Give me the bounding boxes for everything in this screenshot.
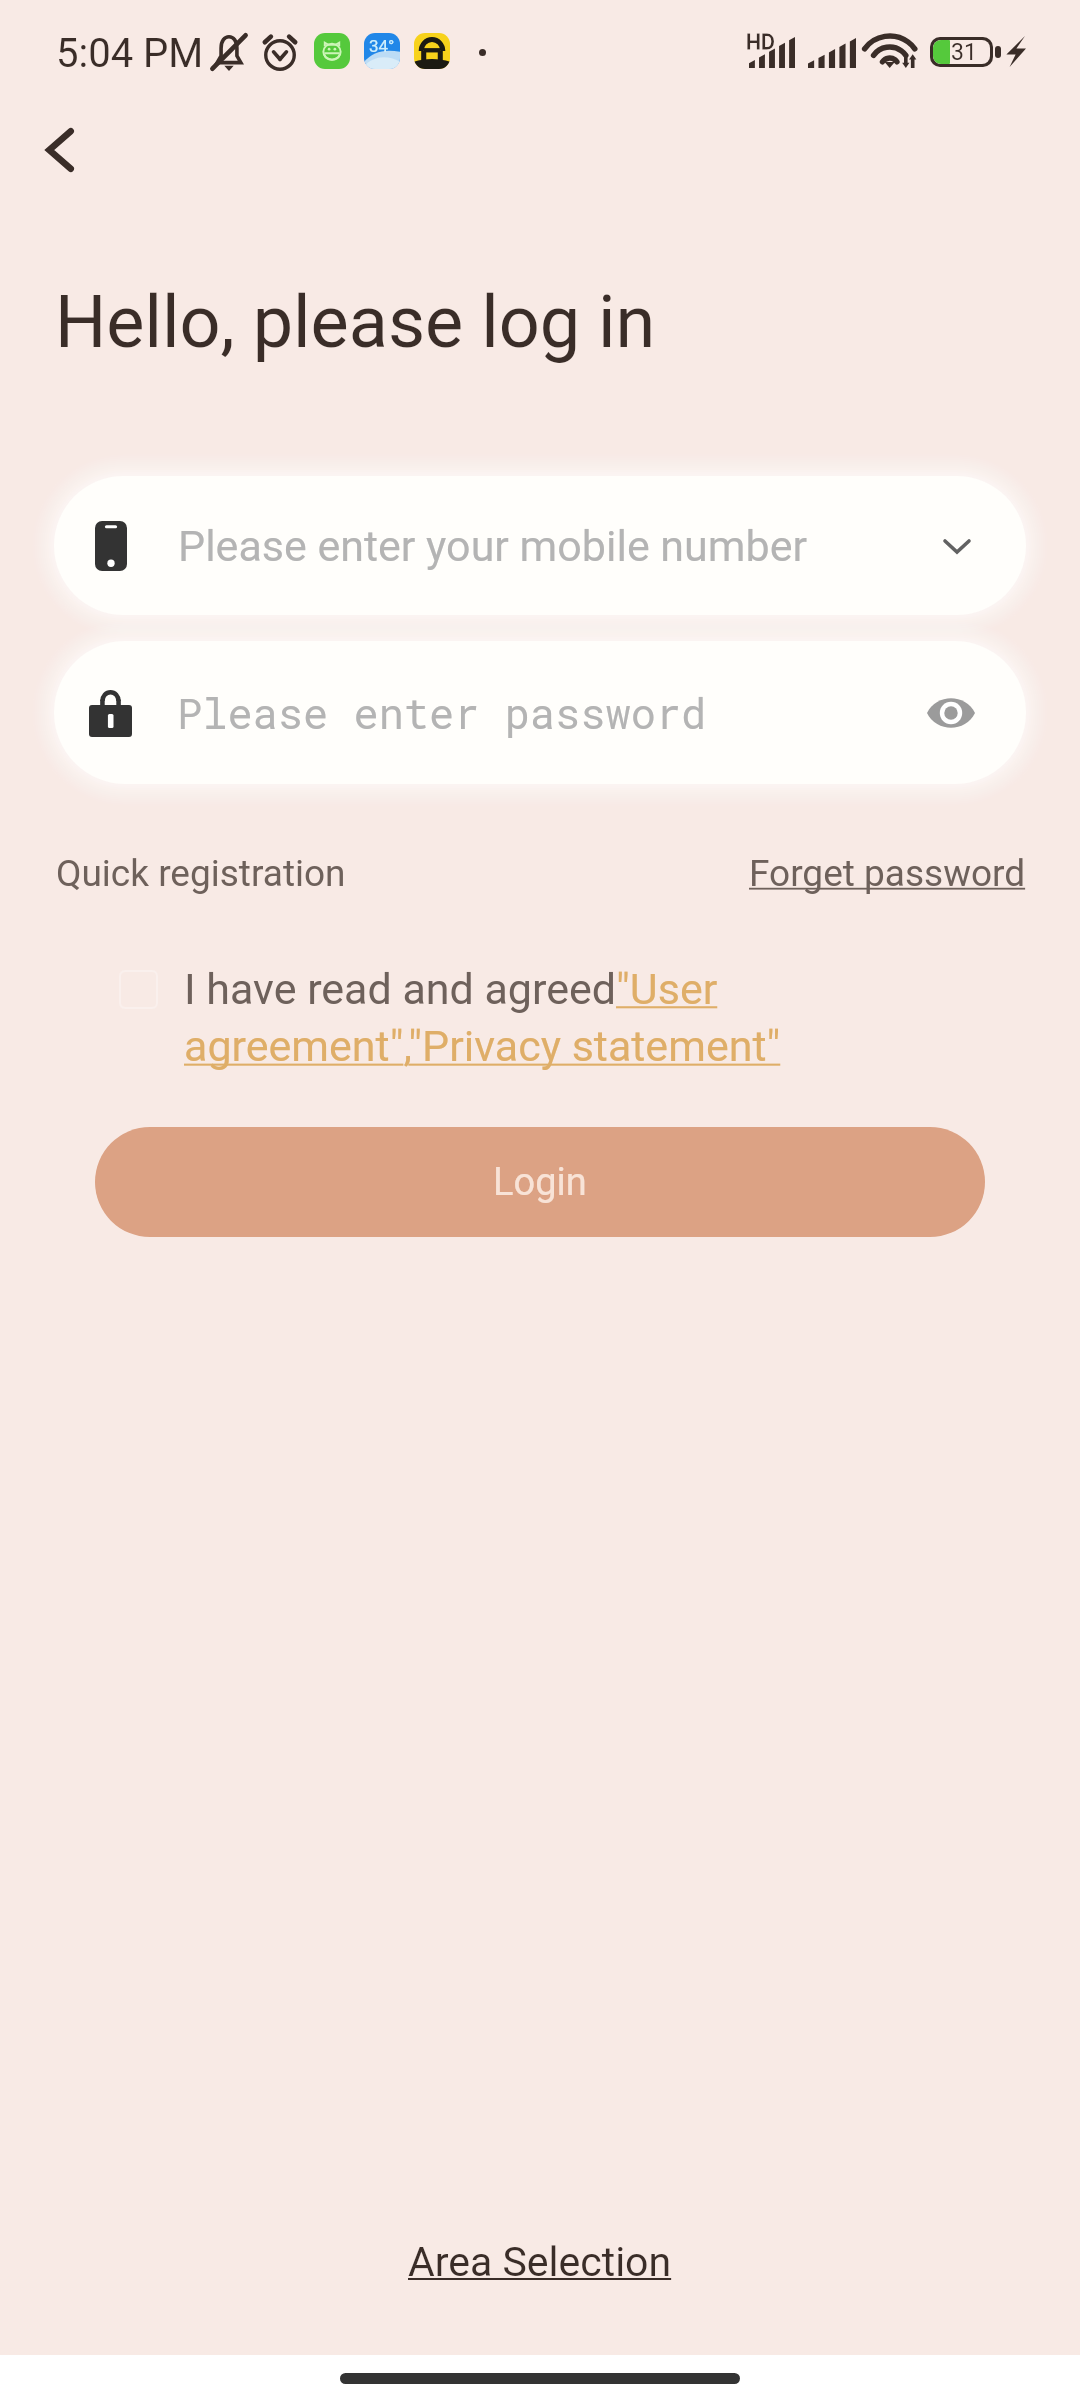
button[interactable]: Back — [16, 106, 104, 194]
staticText: Please enter your mobile number — [178, 521, 808, 571]
button[interactable]: Quick registration — [56, 852, 346, 895]
button[interactable]: Please enter your mobile number — [54, 476, 1026, 615]
staticText: 31 — [951, 39, 977, 66]
staticText: 5:04 PM — [56, 30, 204, 77]
button[interactable]: Show password — [912, 674, 990, 752]
staticText: HD — [746, 30, 775, 55]
staticText: 34° — [369, 36, 395, 56]
button[interactable]: I have read and agreed"User agreement","… — [184, 964, 794, 1072]
button[interactable]: Forget password — [749, 852, 1026, 895]
staticText: Hello, please log in — [55, 280, 656, 364]
staticText: Please enter password — [177, 685, 707, 740]
button[interactable]: Area Selection — [408, 2238, 672, 2286]
button[interactable]: Select country code — [924, 513, 990, 579]
button[interactable]: Please enter password — [54, 641, 1026, 784]
staticText: Login — [493, 1160, 587, 1205]
button[interactable]: Login — [95, 1127, 985, 1237]
